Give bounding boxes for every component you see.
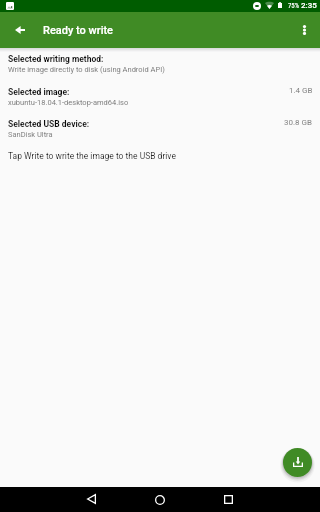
button[interactable]: Recent apps — [214, 487, 243, 512]
staticText: 2:35 — [301, 1, 317, 10]
button[interactable]: More options — [289, 16, 318, 45]
button[interactable]: Navigate up — [5, 16, 34, 45]
button[interactable]: Write image — [283, 448, 312, 477]
staticText: Selected writing method: — [8, 54, 104, 64]
button[interactable]: Back — [77, 486, 106, 511]
staticText: 30.8 GB — [284, 118, 313, 127]
staticText: xubuntu-18.04.1-desktop-amd64.iso — [8, 98, 129, 107]
staticText: 75% — [288, 2, 300, 10]
staticText: Selected USB device: — [8, 119, 90, 129]
staticText: 1.4 GB — [289, 86, 313, 95]
staticText: SanDisk Ultra — [8, 130, 53, 139]
staticText: Tap Write to write the image to the USB … — [8, 151, 176, 161]
button[interactable]: Selected USB device: — [0, 119, 320, 139]
staticText: Selected image: — [8, 87, 70, 97]
button[interactable]: Selected writing method: — [0, 54, 320, 74]
staticText: Ready to write — [43, 24, 113, 37]
button[interactable]: Home — [145, 487, 174, 512]
staticText: Write image directly to disk (using Andr… — [8, 65, 165, 74]
button[interactable]: Selected image: — [0, 87, 320, 107]
